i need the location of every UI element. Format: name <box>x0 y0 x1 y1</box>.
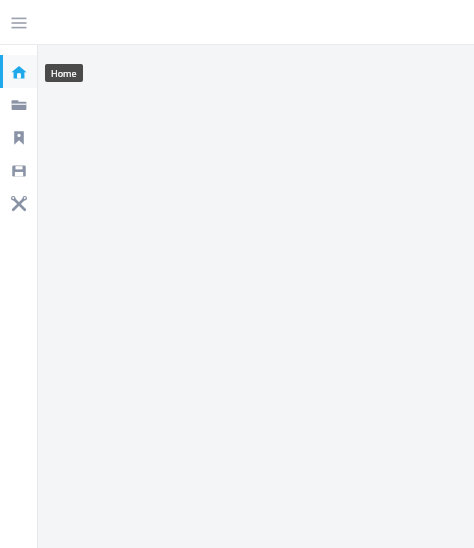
button[interactable]: Menu <box>6 10 32 36</box>
button[interactable]: Home <box>0 55 38 88</box>
button[interactable]: Files <box>0 88 38 121</box>
button[interactable]: Bookmarks <box>0 121 38 154</box>
button[interactable]: Saved <box>0 154 38 187</box>
button[interactable]: Tools <box>0 187 38 220</box>
staticText: Home <box>51 67 77 79</box>
